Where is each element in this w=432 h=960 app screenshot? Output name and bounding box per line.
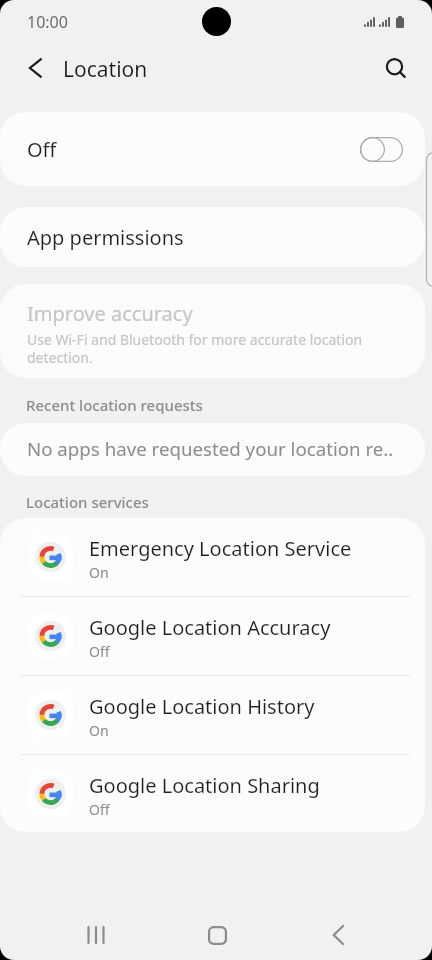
staticText: No apps have requested your location re.…: [27, 436, 394, 461]
staticText: Use Wi-Fi and Bluetooth for more accurat…: [27, 330, 365, 367]
button[interactable]: Location on/off: [360, 137, 403, 162]
staticText: Off: [27, 136, 57, 163]
staticText: Google Location Accuracy: [89, 614, 331, 641]
button[interactable]: Google Location History: [0, 676, 425, 754]
button[interactable]: Google Location Sharing: [0, 755, 425, 832]
button[interactable]: Emergency Location Service: [0, 518, 425, 596]
staticText: Improve accuracy: [27, 300, 193, 327]
button[interactable]: Search: [373, 46, 417, 90]
staticText: Emergency Location Service: [89, 535, 352, 562]
staticText: Off: [89, 800, 110, 819]
button[interactable]: App permissions: [0, 207, 425, 267]
button[interactable]: Off: [0, 112, 425, 186]
staticText: App permissions: [27, 224, 184, 251]
staticText: Location: [63, 55, 148, 84]
staticText: 10:00: [27, 11, 68, 33]
staticText: On: [89, 721, 109, 740]
staticText: Recent location requests: [26, 395, 203, 415]
button[interactable]: Home: [187, 905, 247, 960]
button[interactable]: Google Location Accuracy: [0, 597, 425, 675]
staticText: Off: [89, 642, 110, 661]
button[interactable]: Back: [308, 905, 368, 960]
staticText: Location services: [26, 492, 149, 512]
staticText: On: [89, 563, 109, 582]
staticText: Google Location Sharing: [89, 772, 320, 799]
staticText: Google Location History: [89, 693, 315, 720]
button[interactable]: Recent apps: [66, 905, 126, 960]
button[interactable]: Navigate up: [13, 46, 57, 90]
